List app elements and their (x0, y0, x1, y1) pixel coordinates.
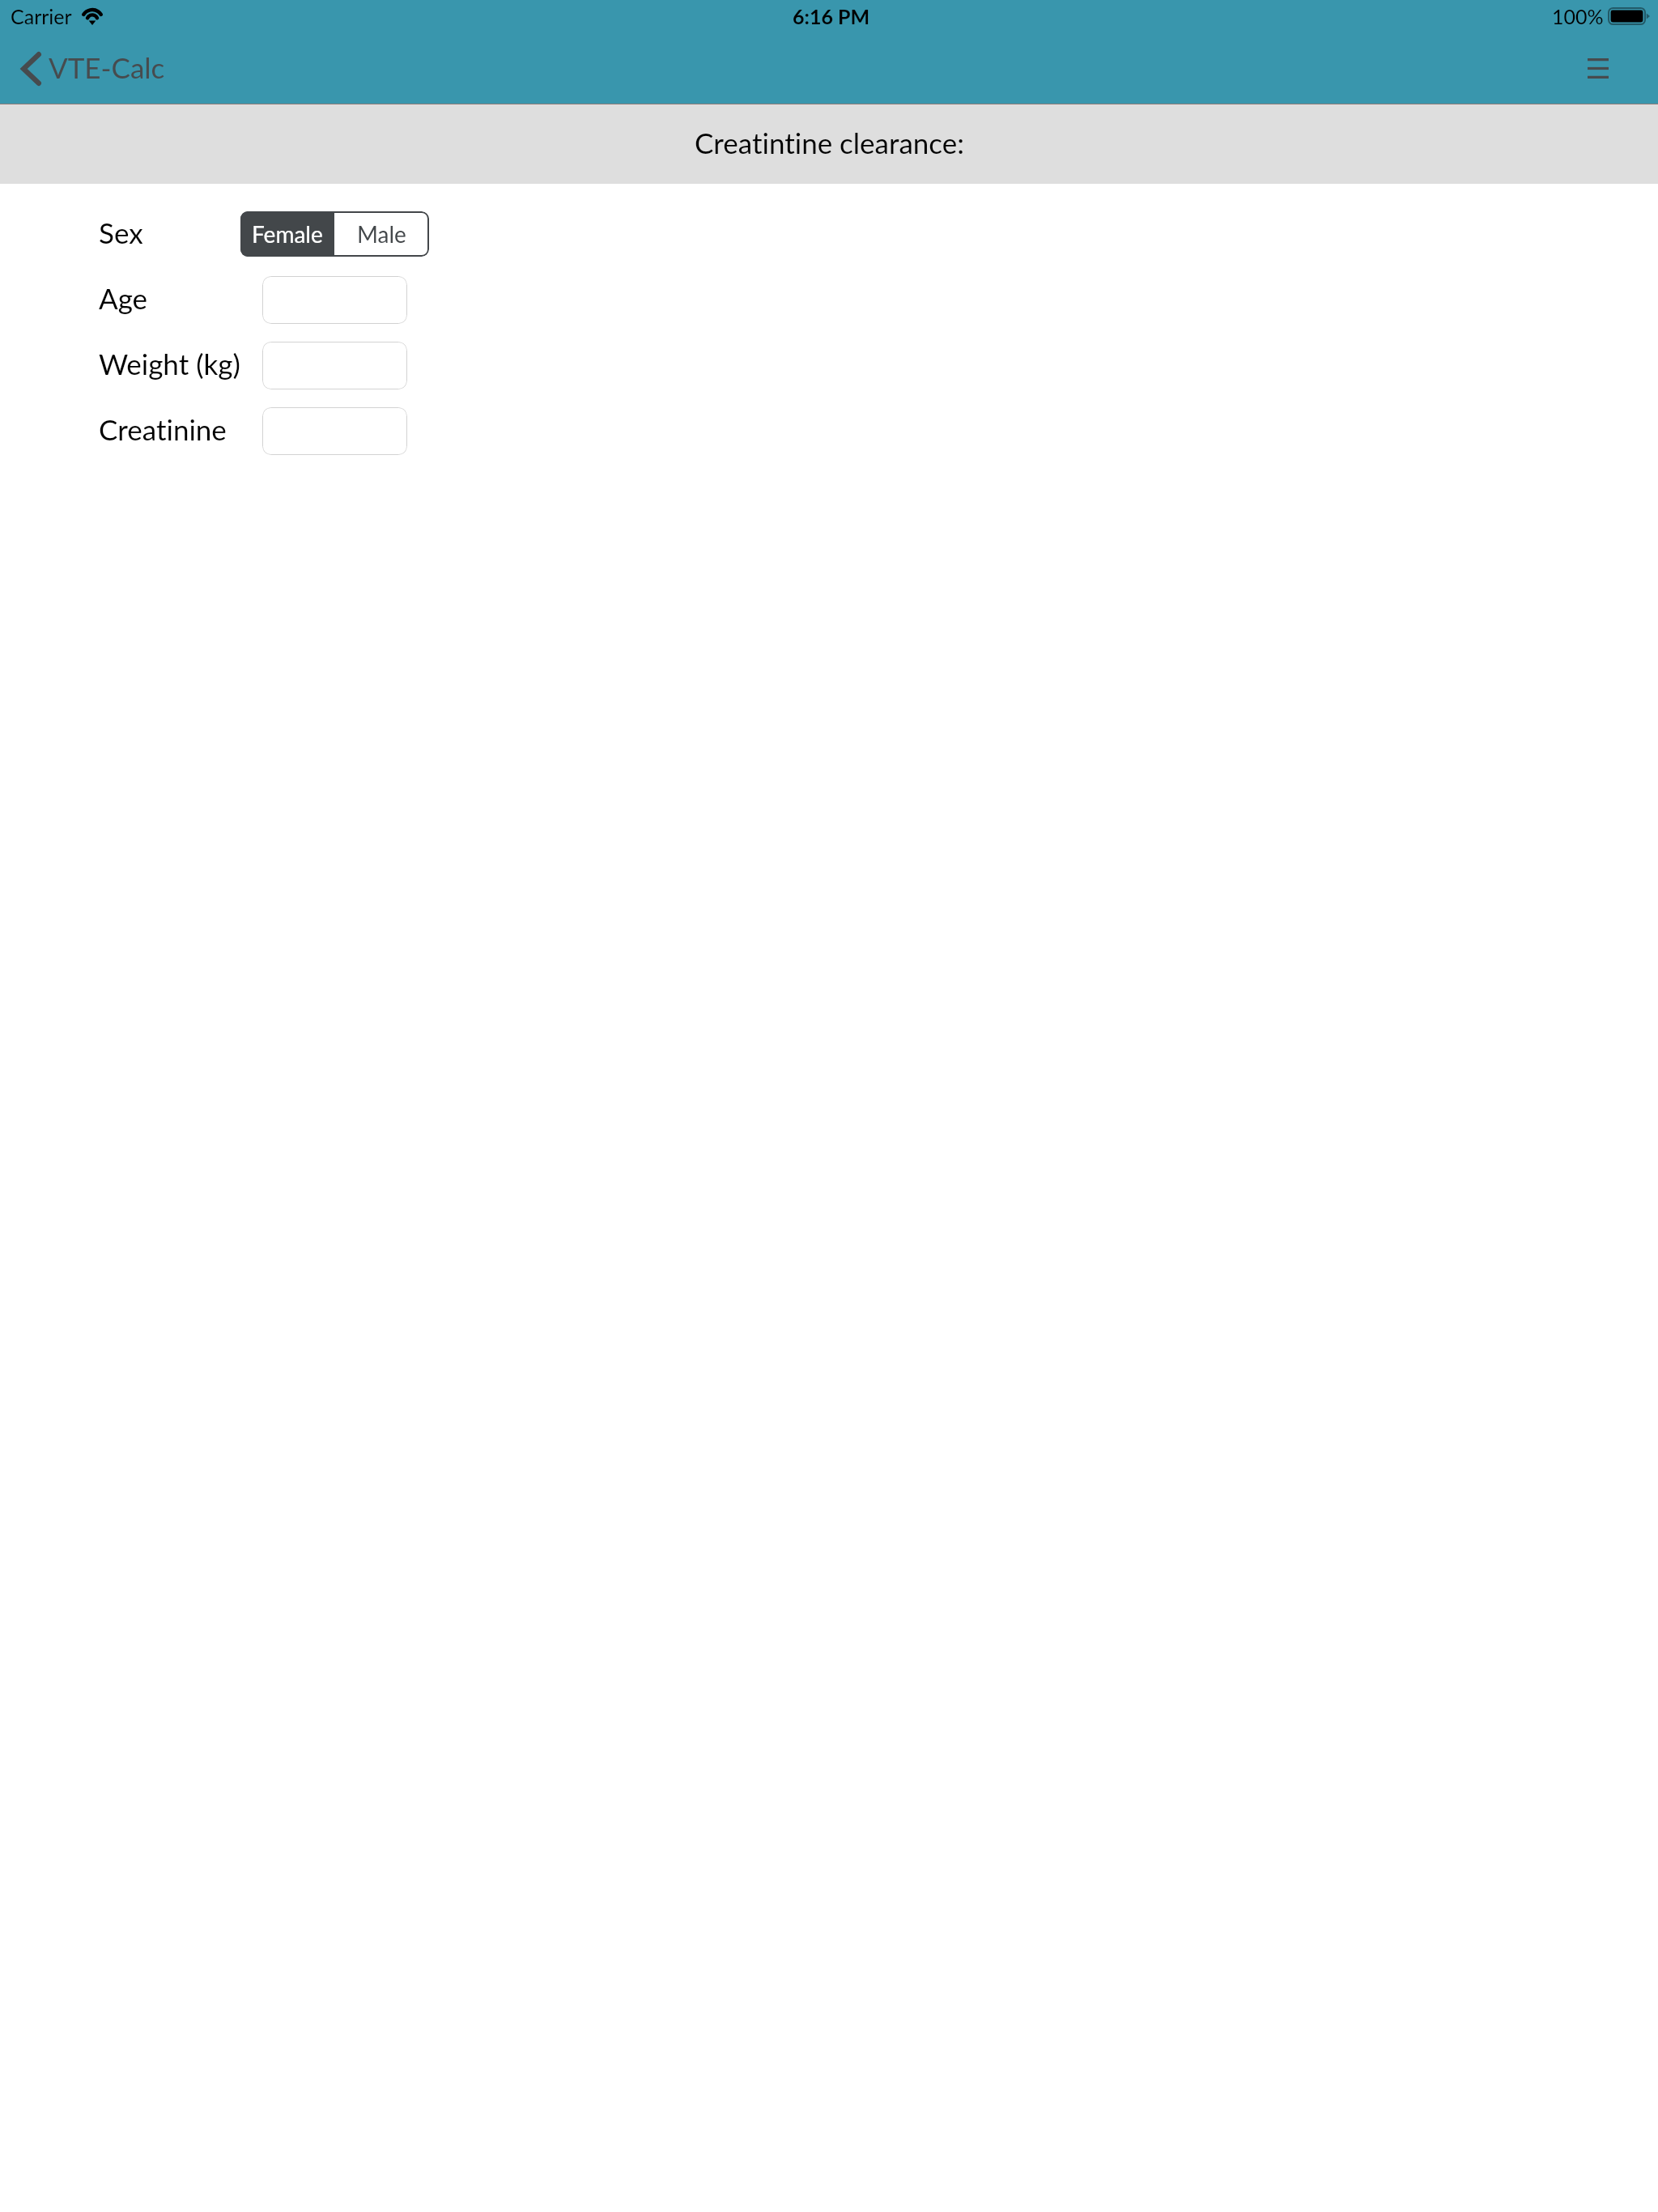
button[interactable]: Female (240, 211, 334, 257)
staticText: 6:16 PM (793, 4, 870, 28)
button[interactable]: Back to VTE-Calc (0, 46, 176, 90)
staticText: Sex (99, 215, 143, 249)
staticText: Weight (kg) (99, 347, 240, 381)
staticText: 100% (1552, 4, 1604, 28)
staticText: Creatinine (99, 412, 227, 446)
staticText: Age (99, 281, 148, 315)
button[interactable]: Creatinine input field (262, 407, 407, 455)
staticText: Female (252, 220, 323, 248)
staticText: Carrier (11, 4, 72, 28)
staticText: VTE-Calc (49, 50, 165, 84)
button[interactable]: Age input field (262, 276, 407, 324)
staticText: Creatintine clearance: (695, 125, 964, 160)
button[interactable]: Male (334, 211, 429, 257)
staticText: Male (357, 220, 406, 248)
button[interactable]: Weight (kg) input field (262, 342, 407, 389)
button[interactable]: Menu (1558, 40, 1658, 96)
